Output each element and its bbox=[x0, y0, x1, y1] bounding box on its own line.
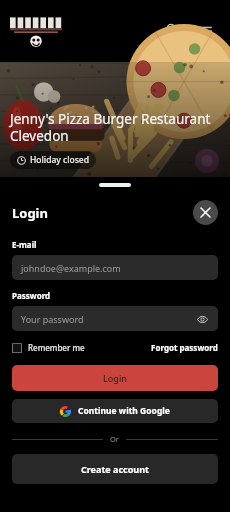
staticText: E-mail bbox=[12, 239, 37, 250]
button[interactable]: Account bbox=[156, 16, 186, 46]
button[interactable]: johndoe@example.com bbox=[12, 255, 218, 280]
staticText: Create account bbox=[81, 463, 149, 475]
button[interactable]: Remember me bbox=[12, 342, 85, 353]
button[interactable]: Create account bbox=[12, 454, 218, 484]
staticText: Login bbox=[12, 204, 48, 222]
button[interactable]: Continue with Google bbox=[12, 399, 218, 423]
button[interactable]: Your password bbox=[12, 306, 218, 331]
button[interactable]: Close bbox=[193, 200, 218, 225]
button[interactable]: Holiday closed bbox=[10, 151, 96, 169]
button[interactable]: Menu bbox=[188, 16, 218, 46]
staticText: Holiday closed bbox=[30, 154, 89, 166]
other: Show password bbox=[195, 312, 209, 326]
staticText: Your password bbox=[21, 313, 84, 325]
button[interactable]: Jenny's home bbox=[10, 14, 62, 48]
staticText: Remember me bbox=[28, 342, 85, 353]
staticText: Login bbox=[103, 372, 127, 384]
staticText: Jenny's Pizza Burger Restaurant Clevedon bbox=[10, 110, 211, 145]
staticText: Continue with Google bbox=[78, 405, 170, 417]
staticText: Forgot password bbox=[151, 342, 218, 353]
staticText: Or bbox=[110, 434, 119, 444]
staticText: johndoe@example.com bbox=[21, 262, 121, 274]
staticText: Password bbox=[12, 290, 51, 301]
button[interactable]: Login bbox=[12, 365, 218, 391]
button[interactable]: Forgot password bbox=[151, 342, 218, 353]
